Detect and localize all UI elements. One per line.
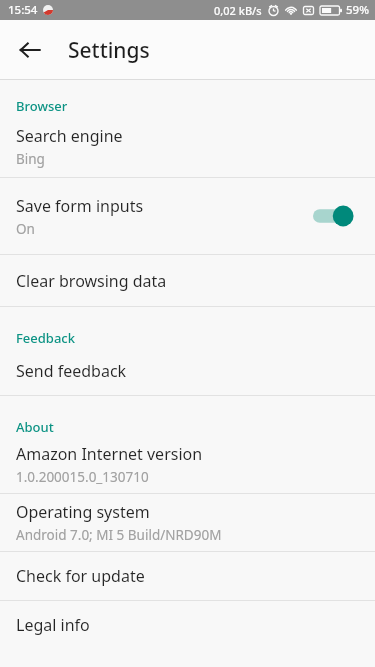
staticText: Settings	[68, 36, 150, 65]
staticText: Amazon Internet version	[16, 443, 203, 465]
staticText: On	[16, 220, 35, 238]
staticText: Save form inputs	[16, 195, 144, 217]
staticText: 0,02 kB/s	[214, 3, 262, 18]
staticText: 59%	[346, 2, 369, 18]
button[interactable]: Legal info	[0, 601, 375, 649]
staticText: Send feedback	[16, 360, 127, 382]
staticText: Operating system	[16, 501, 150, 523]
staticText: Legal info	[16, 614, 90, 636]
staticText: Clear browsing data	[16, 270, 167, 292]
staticText: Browser	[16, 97, 68, 115]
staticText: Android 7.0; MI 5 Build/NRD90M	[16, 526, 222, 544]
staticText: Search engine	[16, 125, 123, 147]
staticText: 15:54	[8, 2, 38, 18]
staticText: Bing	[16, 150, 45, 168]
button[interactable]: Operating system	[0, 494, 375, 551]
staticText: Check for update	[16, 565, 145, 587]
button[interactable]: Check for update	[0, 552, 375, 600]
button[interactable]: Search engine	[0, 115, 375, 177]
button[interactable]: Clear browsing data	[0, 255, 375, 306]
staticText: About	[16, 418, 54, 436]
staticText: Feedback	[16, 329, 75, 347]
button[interactable]: Amazon Internet version	[0, 436, 375, 493]
button[interactable]: Save form inputs toggle, on	[313, 203, 359, 229]
button[interactable]: Save form inputs	[0, 178, 375, 254]
staticText: 1.0.200015.0_130710	[16, 468, 149, 486]
button[interactable]: Back	[8, 28, 52, 72]
button[interactable]: Send feedback	[0, 347, 375, 395]
